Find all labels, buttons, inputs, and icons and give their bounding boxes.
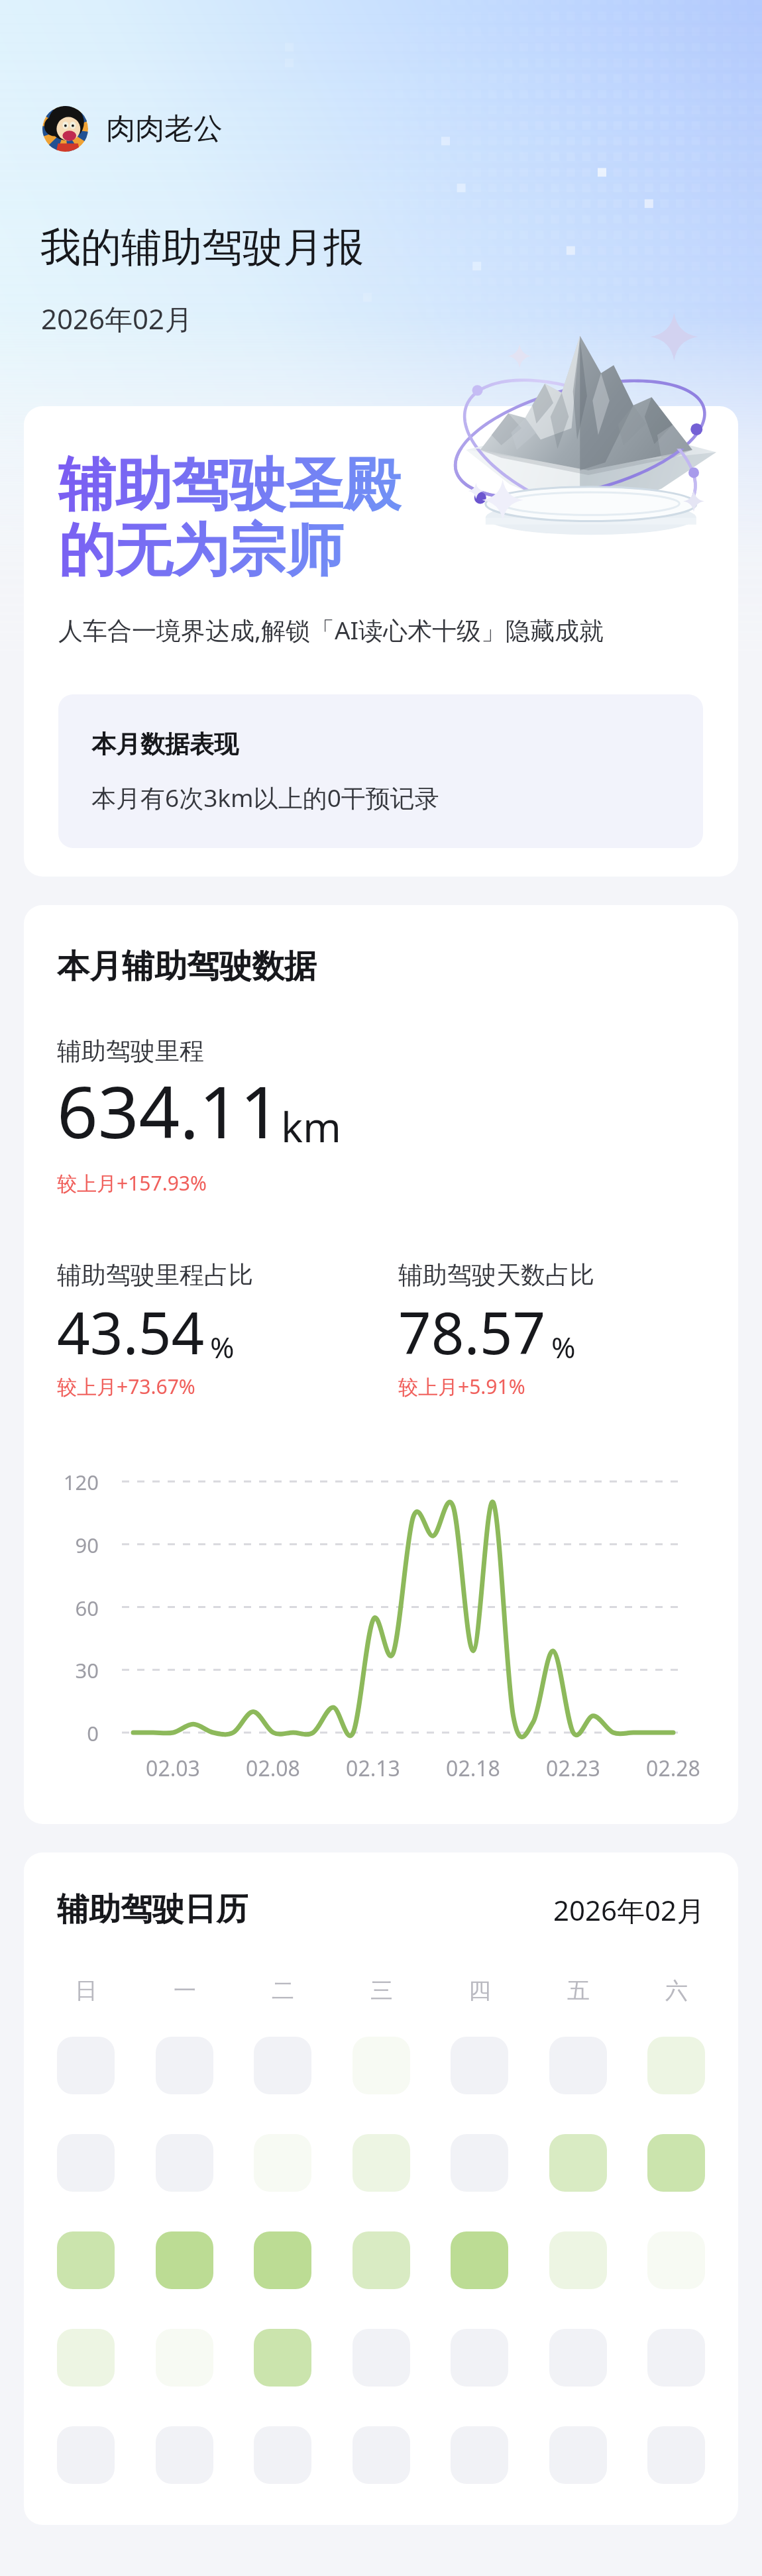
staticText: 02.28 <box>620 1754 726 1783</box>
button[interactable] <box>647 2329 705 2387</box>
staticText: 02.18 <box>420 1754 526 1783</box>
button[interactable] <box>57 2329 115 2387</box>
staticText: 634.11 <box>57 1062 281 1159</box>
button[interactable] <box>254 2037 311 2094</box>
staticText: 五 <box>567 1976 590 2005</box>
button[interactable] <box>451 2037 508 2094</box>
button[interactable] <box>353 2134 410 2192</box>
staticText: 0 <box>57 1719 99 1747</box>
button[interactable] <box>451 2426 508 2484</box>
button[interactable] <box>156 2426 213 2484</box>
button[interactable]: Profile avatar <box>42 106 223 152</box>
staticText: 02.08 <box>220 1754 326 1783</box>
staticText: 辅助驾驶圣殿 的无为宗师 <box>58 449 400 586</box>
staticText: 一 <box>174 1976 196 2005</box>
button[interactable] <box>156 2134 213 2192</box>
button[interactable] <box>57 2134 115 2192</box>
staticText: 2026年02月 <box>553 1891 705 1929</box>
button[interactable] <box>647 2037 705 2094</box>
button[interactable] <box>549 2426 607 2484</box>
staticText: 三 <box>370 1976 393 2005</box>
button[interactable] <box>451 2134 508 2192</box>
staticText: % <box>551 1327 576 1367</box>
button[interactable] <box>549 2037 607 2094</box>
button[interactable] <box>254 2426 311 2484</box>
staticText: 本月有6次3km以上的0干预记录 <box>91 780 439 814</box>
staticText: 肉肉老公 <box>106 111 223 147</box>
staticText: 本月辅助驾驶数据 <box>57 946 317 987</box>
staticText: 2026年02月 <box>41 299 193 337</box>
staticText: 二 <box>272 1976 294 2005</box>
button[interactable] <box>647 2134 705 2192</box>
button[interactable] <box>353 2329 410 2387</box>
staticText: 02.23 <box>520 1754 626 1783</box>
button[interactable] <box>353 2426 410 2484</box>
staticText: 90 <box>57 1531 99 1559</box>
button[interactable] <box>57 2426 115 2484</box>
button[interactable] <box>451 2329 508 2387</box>
button[interactable] <box>254 2231 311 2289</box>
staticText: km <box>281 1099 342 1154</box>
staticText: 43.54 <box>57 1293 205 1371</box>
button[interactable] <box>549 2329 607 2387</box>
staticText: 02.03 <box>120 1754 226 1783</box>
staticText: 较上月+157.93% <box>57 1169 207 1197</box>
button[interactable] <box>156 2231 213 2289</box>
staticText: 78.57 <box>398 1293 546 1371</box>
button[interactable] <box>254 2134 311 2192</box>
staticText: 人车合一境界达成,解锁「AI读心术十级」隐藏成就 <box>58 613 604 647</box>
staticText: % <box>210 1327 235 1367</box>
staticText: 120 <box>57 1468 99 1496</box>
staticText: 辅助驾驶里程占比 <box>57 1260 253 1291</box>
staticText: 较上月+73.67% <box>57 1373 195 1400</box>
staticText: 较上月+5.91% <box>398 1373 525 1400</box>
button[interactable] <box>647 2231 705 2289</box>
button[interactable] <box>451 2231 508 2289</box>
button[interactable] <box>254 2329 311 2387</box>
staticText: 辅助驾驶日历 <box>57 1890 248 1929</box>
button[interactable] <box>647 2426 705 2484</box>
button[interactable] <box>156 2037 213 2094</box>
staticText: 日 <box>75 1976 97 2005</box>
button[interactable] <box>549 2134 607 2192</box>
button[interactable] <box>549 2231 607 2289</box>
staticText: 辅助驾驶天数占比 <box>398 1260 594 1291</box>
button[interactable] <box>57 2231 115 2289</box>
staticText: 60 <box>57 1594 99 1622</box>
staticText: 六 <box>665 1976 688 2005</box>
button[interactable] <box>57 2037 115 2094</box>
staticText: 30 <box>57 1656 99 1684</box>
staticText: 我的辅助驾驶月报 <box>40 222 364 273</box>
other: Profile avatar <box>42 106 88 152</box>
staticText: 02.13 <box>320 1754 426 1783</box>
staticText: 辅助驾驶里程 <box>57 1036 204 1067</box>
staticText: 本月数据表现 <box>91 729 239 760</box>
button[interactable] <box>353 2231 410 2289</box>
staticText: 四 <box>468 1976 491 2005</box>
